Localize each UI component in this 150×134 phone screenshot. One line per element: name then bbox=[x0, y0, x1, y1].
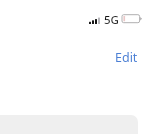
other: Cellular signal strength bbox=[89, 15, 101, 24]
staticText: 5G bbox=[104, 12, 119, 28]
staticText: Edit bbox=[115, 49, 138, 66]
button[interactable]: Edit bbox=[109, 45, 144, 70]
other: Battery low bbox=[121, 14, 143, 24]
